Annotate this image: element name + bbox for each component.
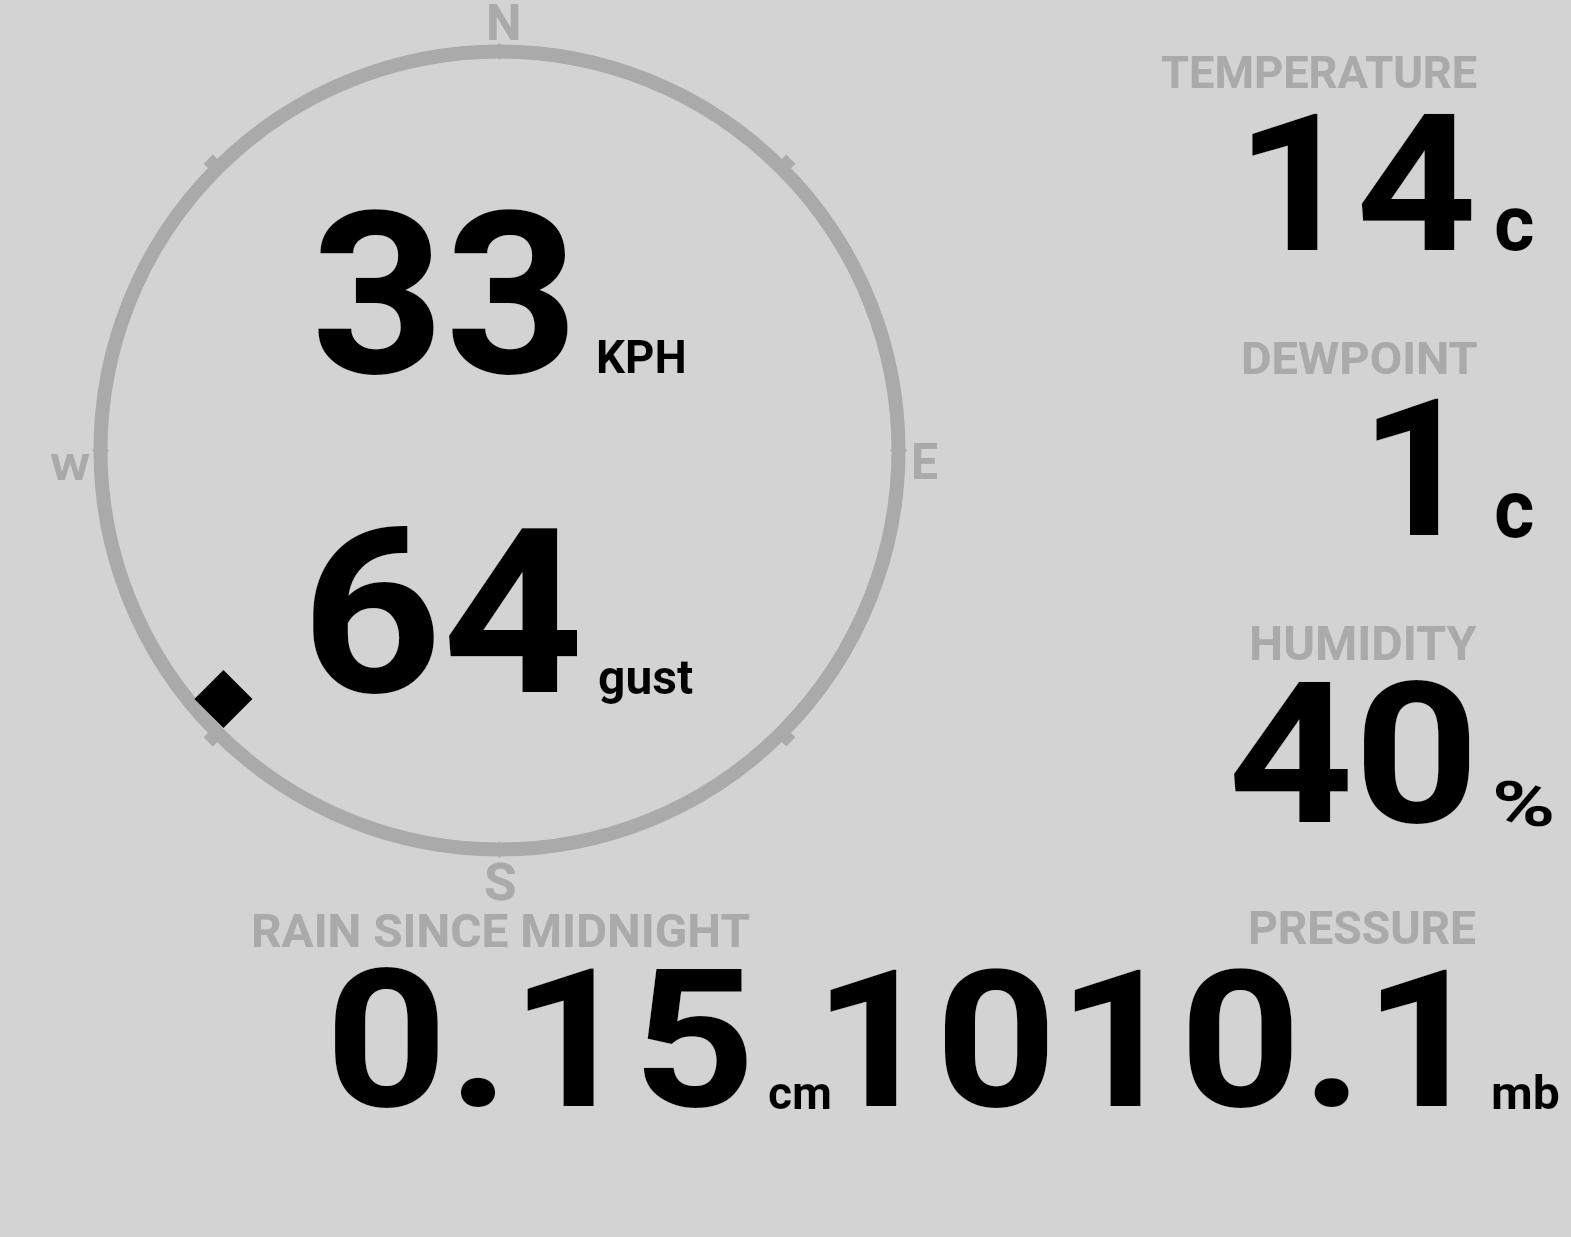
button[interactable]: Dewpoint 1 c: [1130, 325, 1571, 555]
staticText: S: [484, 852, 517, 913]
staticText: TEMPERATURE: [1161, 47, 1478, 99]
staticText: 64: [301, 479, 584, 748]
staticText: DEWPOINT: [1241, 333, 1479, 384]
staticText: c: [1494, 462, 1535, 557]
button[interactable]: Wind gust 64: [290, 470, 710, 720]
staticText: cm: [768, 1065, 833, 1120]
button[interactable]: Wind speed 33 KPH: [290, 150, 710, 400]
staticText: W: [50, 445, 91, 489]
staticText: RAIN SINCE MIDNIGHT: [251, 904, 750, 958]
button[interactable]: Rain since midnight 0.15 cm: [240, 895, 840, 1125]
button[interactable]: Humidity 40 percent: [1130, 610, 1571, 840]
staticText: 1: [1360, 358, 1475, 582]
staticText: E: [911, 433, 939, 492]
staticText: mb: [1491, 1066, 1560, 1120]
staticText: 0.15: [325, 927, 756, 1153]
staticText: 14: [1235, 73, 1478, 297]
staticText: KPH: [596, 330, 688, 384]
button[interactable]: Pressure 1010.1 mb: [845, 895, 1571, 1125]
staticText: 1010.1: [813, 929, 1486, 1152]
staticText: 33: [311, 162, 579, 428]
staticText: PRESSURE: [1248, 901, 1476, 956]
staticText: c: [1494, 177, 1535, 269]
staticText: 40: [1228, 640, 1480, 870]
staticText: N: [486, 0, 522, 52]
staticText: %: [1492, 767, 1555, 842]
staticText: HUMIDITY: [1249, 616, 1477, 672]
staticText: gust: [598, 649, 694, 705]
button[interactable]: Temperature 14 c: [1130, 40, 1571, 270]
